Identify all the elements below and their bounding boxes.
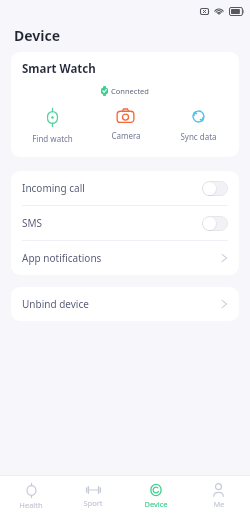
button[interactable]: App notifications: [11, 241, 239, 275]
staticText: Sync data: [180, 131, 217, 142]
button[interactable]: Incoming call: [11, 171, 239, 205]
button[interactable]: Sync data: [162, 106, 235, 144]
button[interactable]: SMS: [202, 216, 228, 231]
staticText: Find watch: [32, 133, 73, 144]
button[interactable]: Find watch: [15, 106, 89, 146]
button[interactable]: SMS: [11, 206, 239, 240]
staticText: App notifications: [22, 251, 221, 265]
staticText: Me: [213, 499, 225, 509]
button[interactable]: Health: [0, 476, 62, 516]
staticText: Connected: [111, 86, 149, 96]
button[interactable]: Unbind device: [11, 287, 239, 321]
staticText: Health: [19, 500, 43, 510]
button[interactable]: Device: [124, 476, 187, 516]
staticText: Device: [144, 499, 168, 509]
staticText: Unbind device: [22, 297, 221, 311]
button[interactable]: Sport: [62, 476, 124, 516]
staticText: Camera: [111, 130, 141, 141]
staticText: Incoming call: [22, 181, 202, 195]
staticText: SMS: [22, 216, 202, 230]
staticText: Sport: [83, 498, 103, 508]
staticText: Smart Watch: [22, 61, 96, 77]
button[interactable]: Me: [187, 476, 250, 516]
button[interactable]: Camera: [89, 106, 162, 143]
staticText: Device: [14, 26, 61, 45]
button[interactable]: Incoming call: [202, 181, 228, 196]
